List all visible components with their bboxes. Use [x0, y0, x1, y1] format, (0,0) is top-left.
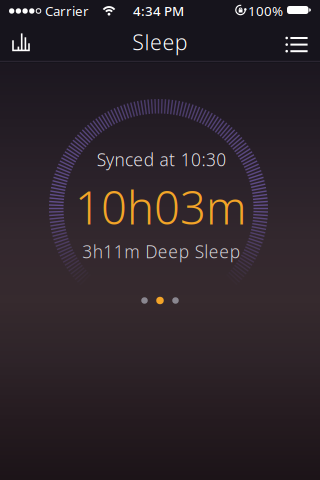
staticText: 3h11m Deep Sleep — [82, 240, 240, 263]
button[interactable]: Menu — [276, 20, 320, 63]
staticText: Synced at 10:30 — [97, 148, 226, 171]
staticText: 4:34 PM — [133, 2, 184, 20]
staticText: Sleep — [132, 28, 188, 56]
staticText: 100% — [248, 2, 283, 20]
staticText: Carrier — [45, 2, 89, 20]
staticText: 10h03m — [75, 177, 247, 237]
button[interactable]: Statistics — [0, 20, 44, 63]
